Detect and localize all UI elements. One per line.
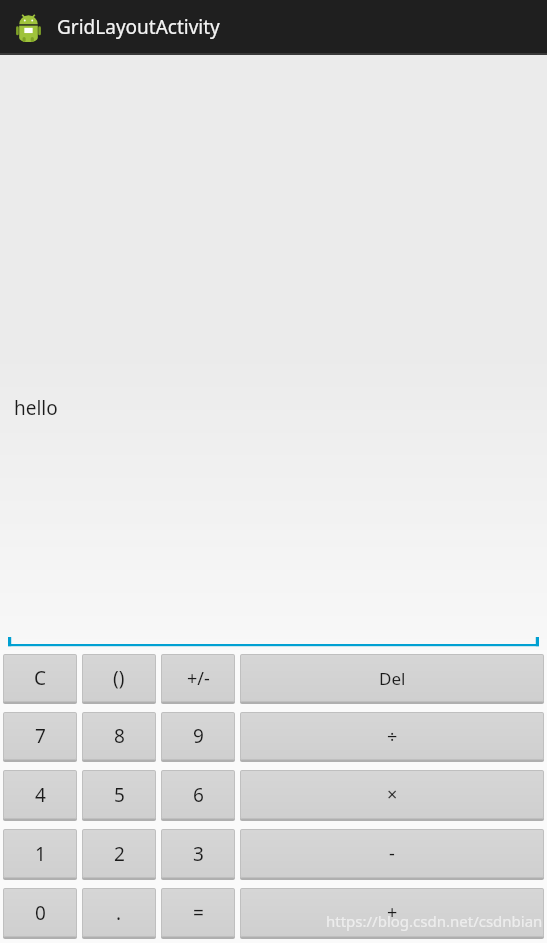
- button[interactable]: 4: [3, 770, 77, 819]
- button[interactable]: .: [82, 888, 156, 937]
- button[interactable]: -: [240, 829, 544, 878]
- button[interactable]: +/-: [161, 654, 235, 702]
- staticText: ÷: [387, 724, 398, 749]
- staticText: C: [34, 665, 47, 691]
- staticText: 1: [35, 841, 46, 867]
- staticText: 0: [35, 900, 46, 926]
- staticText: =: [193, 900, 204, 926]
- staticText: 7: [35, 723, 46, 749]
- button[interactable]: (): [82, 654, 156, 702]
- staticText: 3: [193, 841, 204, 867]
- button[interactable]: =: [161, 888, 235, 937]
- button[interactable]: ÷: [240, 712, 544, 760]
- button[interactable]: 1: [3, 829, 77, 878]
- staticText: ×: [387, 782, 398, 807]
- button[interactable]: 6: [161, 770, 235, 819]
- button[interactable]: +: [240, 888, 544, 937]
- button[interactable]: 2: [82, 829, 156, 878]
- staticText: 5: [114, 782, 125, 808]
- staticText: GridLayoutActivity: [57, 14, 220, 40]
- staticText: https://blog.csdn.net/csdnbian: [326, 911, 543, 931]
- button[interactable]: C: [3, 654, 77, 702]
- staticText: (): [113, 665, 125, 691]
- staticText: 6: [193, 782, 204, 808]
- staticText: -: [389, 841, 395, 866]
- button[interactable]: 5: [82, 770, 156, 819]
- button[interactable]: 7: [3, 712, 77, 760]
- button[interactable]: 9: [161, 712, 235, 760]
- button[interactable]: 3: [161, 829, 235, 878]
- staticText: hello: [14, 395, 58, 421]
- staticText: .: [116, 900, 122, 926]
- staticText: 8: [114, 723, 125, 749]
- button[interactable]: ×: [240, 770, 544, 819]
- button[interactable]: 0: [3, 888, 77, 937]
- staticText: 4: [35, 782, 46, 808]
- staticText: Del: [379, 667, 406, 690]
- staticText: 2: [114, 841, 125, 867]
- button[interactable]: 8: [82, 712, 156, 760]
- staticText: 9: [193, 723, 204, 749]
- button[interactable]: Del: [240, 654, 544, 702]
- staticText: +: [387, 900, 398, 925]
- staticText: +/-: [187, 666, 210, 691]
